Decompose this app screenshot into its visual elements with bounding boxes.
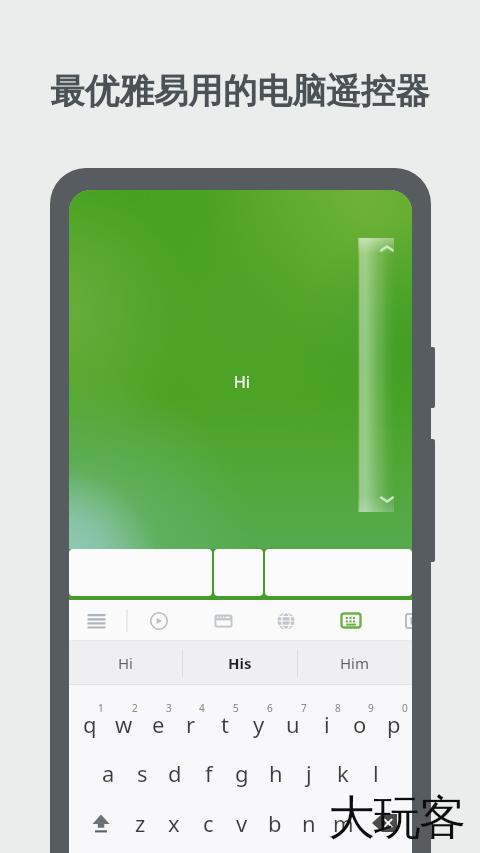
- button[interactable]: 6: [242, 695, 276, 747]
- button[interactable]: a: [91, 750, 125, 796]
- staticText: 9: [368, 701, 374, 715]
- button[interactable]: d: [158, 750, 192, 796]
- button[interactable]: 0: [377, 695, 411, 747]
- staticText: 8: [335, 701, 341, 715]
- button[interactable]: 7: [276, 695, 310, 747]
- button[interactable]: Him: [298, 641, 412, 685]
- staticText: c: [203, 808, 214, 838]
- staticText: e: [152, 709, 165, 739]
- staticText: t: [221, 709, 229, 739]
- button[interactable]: Scroll up: [380, 245, 394, 252]
- button[interactable]: k: [326, 750, 360, 796]
- staticText: 6: [267, 701, 273, 715]
- button[interactable]: Voice: [136, 600, 182, 641]
- staticText: f: [205, 758, 213, 788]
- button[interactable]: x: [157, 800, 191, 846]
- staticText: s: [137, 758, 148, 788]
- button[interactable]: Backspace: [365, 800, 405, 846]
- staticText: 最优雅易用的电脑遥控器: [0, 70, 480, 113]
- staticText: w: [115, 709, 133, 739]
- button[interactable]: [69, 549, 212, 596]
- button[interactable]: [265, 549, 412, 596]
- staticText: a: [102, 758, 115, 788]
- staticText: b: [268, 808, 282, 838]
- staticText: q: [83, 709, 97, 739]
- button[interactable]: 8: [310, 695, 344, 747]
- button[interactable]: Language: [263, 600, 309, 641]
- button[interactable]: z: [123, 800, 157, 846]
- staticText: 7: [301, 701, 307, 715]
- staticText: 2: [132, 701, 138, 715]
- button[interactable]: Hi: [69, 641, 182, 685]
- button[interactable]: 5: [208, 695, 242, 747]
- button[interactable]: Menu: [73, 600, 119, 641]
- staticText: d: [168, 758, 182, 788]
- button[interactable]: j: [292, 750, 326, 796]
- staticText: x: [168, 808, 180, 838]
- staticText: n: [302, 808, 316, 838]
- button[interactable]: 1: [73, 695, 107, 747]
- staticText: o: [353, 709, 367, 739]
- staticText: 3: [166, 701, 172, 715]
- staticText: y: [253, 709, 265, 739]
- staticText: Him: [340, 653, 370, 673]
- staticText: l: [373, 758, 379, 788]
- button[interactable]: f: [192, 750, 226, 796]
- staticText: 大玩客: [328, 789, 465, 848]
- button[interactable]: 9: [343, 695, 377, 747]
- staticText: r: [186, 709, 196, 739]
- staticText: v: [236, 808, 248, 838]
- button[interactable]: Clipboard: [200, 600, 246, 641]
- button[interactable]: n: [292, 800, 326, 846]
- button[interactable]: 4: [174, 695, 208, 747]
- button[interactable]: m: [326, 800, 360, 846]
- staticText: h: [269, 758, 283, 788]
- button[interactable]: His: [183, 641, 297, 685]
- staticText: g: [235, 758, 249, 788]
- button[interactable]: l: [359, 750, 393, 796]
- button[interactable]: h: [259, 750, 293, 796]
- staticText: Hi: [118, 653, 133, 673]
- staticText: z: [135, 808, 146, 838]
- button[interactable]: Keyboard: [328, 600, 374, 641]
- staticText: Hi: [234, 371, 250, 393]
- button[interactable]: b: [258, 800, 292, 846]
- staticText: 4: [199, 701, 205, 715]
- button[interactable]: 3: [141, 695, 175, 747]
- button[interactable]: s: [125, 750, 159, 796]
- button[interactable]: [214, 549, 263, 596]
- staticText: j: [306, 758, 312, 788]
- staticText: m: [333, 808, 354, 838]
- staticText: 0: [402, 701, 408, 715]
- button[interactable]: 2: [107, 695, 141, 747]
- button[interactable]: Shift: [84, 800, 118, 846]
- staticText: 1: [98, 701, 104, 715]
- button[interactable]: g: [225, 750, 259, 796]
- staticText: His: [228, 653, 252, 673]
- staticText: i: [324, 709, 330, 739]
- button[interactable]: Scroll down: [380, 496, 394, 503]
- staticText: k: [337, 758, 349, 788]
- button[interactable]: More: [391, 600, 412, 641]
- staticText: p: [387, 709, 401, 739]
- button[interactable]: c: [191, 800, 225, 846]
- staticText: u: [286, 709, 300, 739]
- button[interactable]: v: [225, 800, 259, 846]
- staticText: 5: [233, 701, 239, 715]
